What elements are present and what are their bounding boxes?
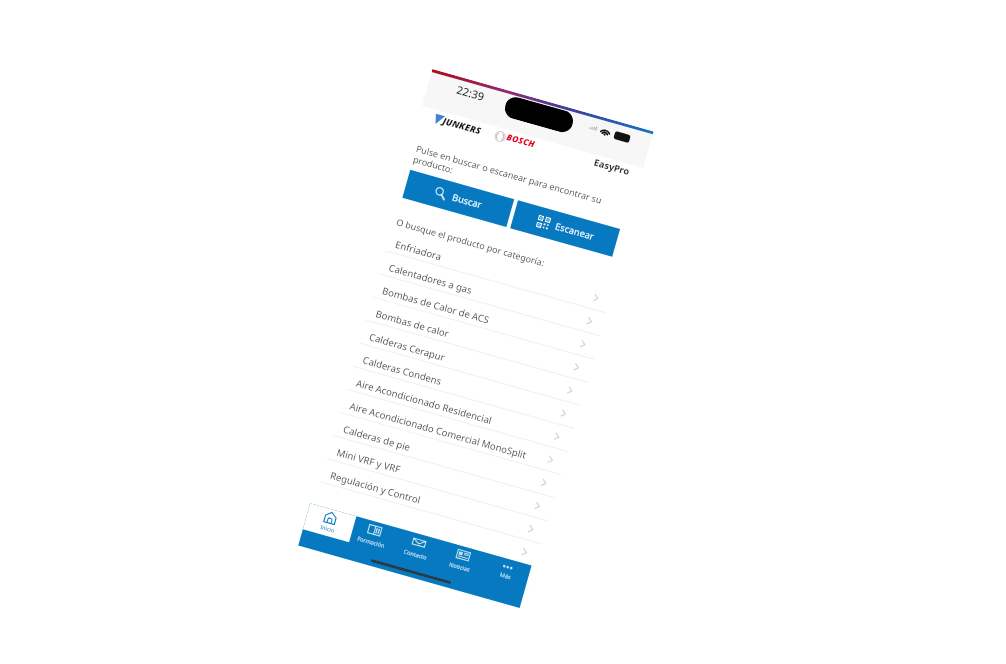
staticText: Calentadores a gas [387, 261, 474, 297]
button[interactable]: Mini VRF y VRF [323, 435, 551, 520]
staticText: Bombas de Calor de ACS [381, 284, 491, 327]
staticText: EasyPro [592, 156, 632, 178]
staticText: Regulación y Control [329, 469, 423, 507]
staticText: Mini VRF y VRF [335, 446, 402, 476]
staticText: Bombas de calor [374, 307, 451, 340]
staticText: Aire Acondicionado Residencial [355, 376, 494, 427]
staticText: BOSCH [505, 131, 537, 151]
staticText: Formación [356, 534, 385, 550]
button[interactable]: Enfriadora [381, 227, 609, 312]
button[interactable]: Calderas Cerapur [355, 319, 583, 405]
staticText: O busque el producto por categoría: [395, 215, 547, 269]
staticText: Buscar [451, 191, 484, 211]
button[interactable]: Formación [347, 515, 399, 553]
button[interactable]: Aire Acondicionado Residencial [342, 366, 570, 451]
staticText: Calderas Cerapur [368, 330, 446, 364]
staticText: Pulse en buscar o escanear para encontra… [412, 142, 611, 218]
button[interactable]: Más [480, 552, 532, 591]
staticText: Escanear [554, 220, 596, 243]
button[interactable]: Escanear [510, 200, 620, 257]
staticText: Inicio [319, 523, 336, 535]
button[interactable]: Calentadores a gas [375, 250, 603, 335]
staticText: 22:39 [455, 82, 487, 104]
staticText: Calderas de pie [342, 423, 413, 454]
button[interactable]: Calderas Condens [349, 342, 577, 428]
button[interactable]: Buscar [402, 170, 514, 227]
button[interactable] [310, 481, 538, 566]
button[interactable] [303, 504, 531, 590]
button[interactable]: Calderas de pie [329, 412, 557, 497]
staticText: Enfriadora [394, 238, 443, 263]
button[interactable]: Noticias [436, 540, 488, 578]
staticText: Noticias [448, 560, 471, 574]
button[interactable]: Regulación y Control [316, 458, 544, 543]
staticText: Calderas Condens [361, 353, 444, 388]
staticText: Más [499, 570, 512, 581]
button[interactable]: Contacto [392, 527, 443, 566]
button[interactable]: Bombas de Calor de ACS [368, 273, 596, 359]
button[interactable]: Bombas de calor [362, 296, 590, 382]
staticText: Aire Acondicionado Comercial MonoSplit [348, 400, 528, 462]
button[interactable]: Inicio [303, 502, 355, 541]
staticText: Contacto [402, 547, 428, 562]
button[interactable]: Aire Acondicionado Comercial MonoSplit [336, 389, 564, 474]
staticText: JUNKERS [441, 114, 483, 136]
